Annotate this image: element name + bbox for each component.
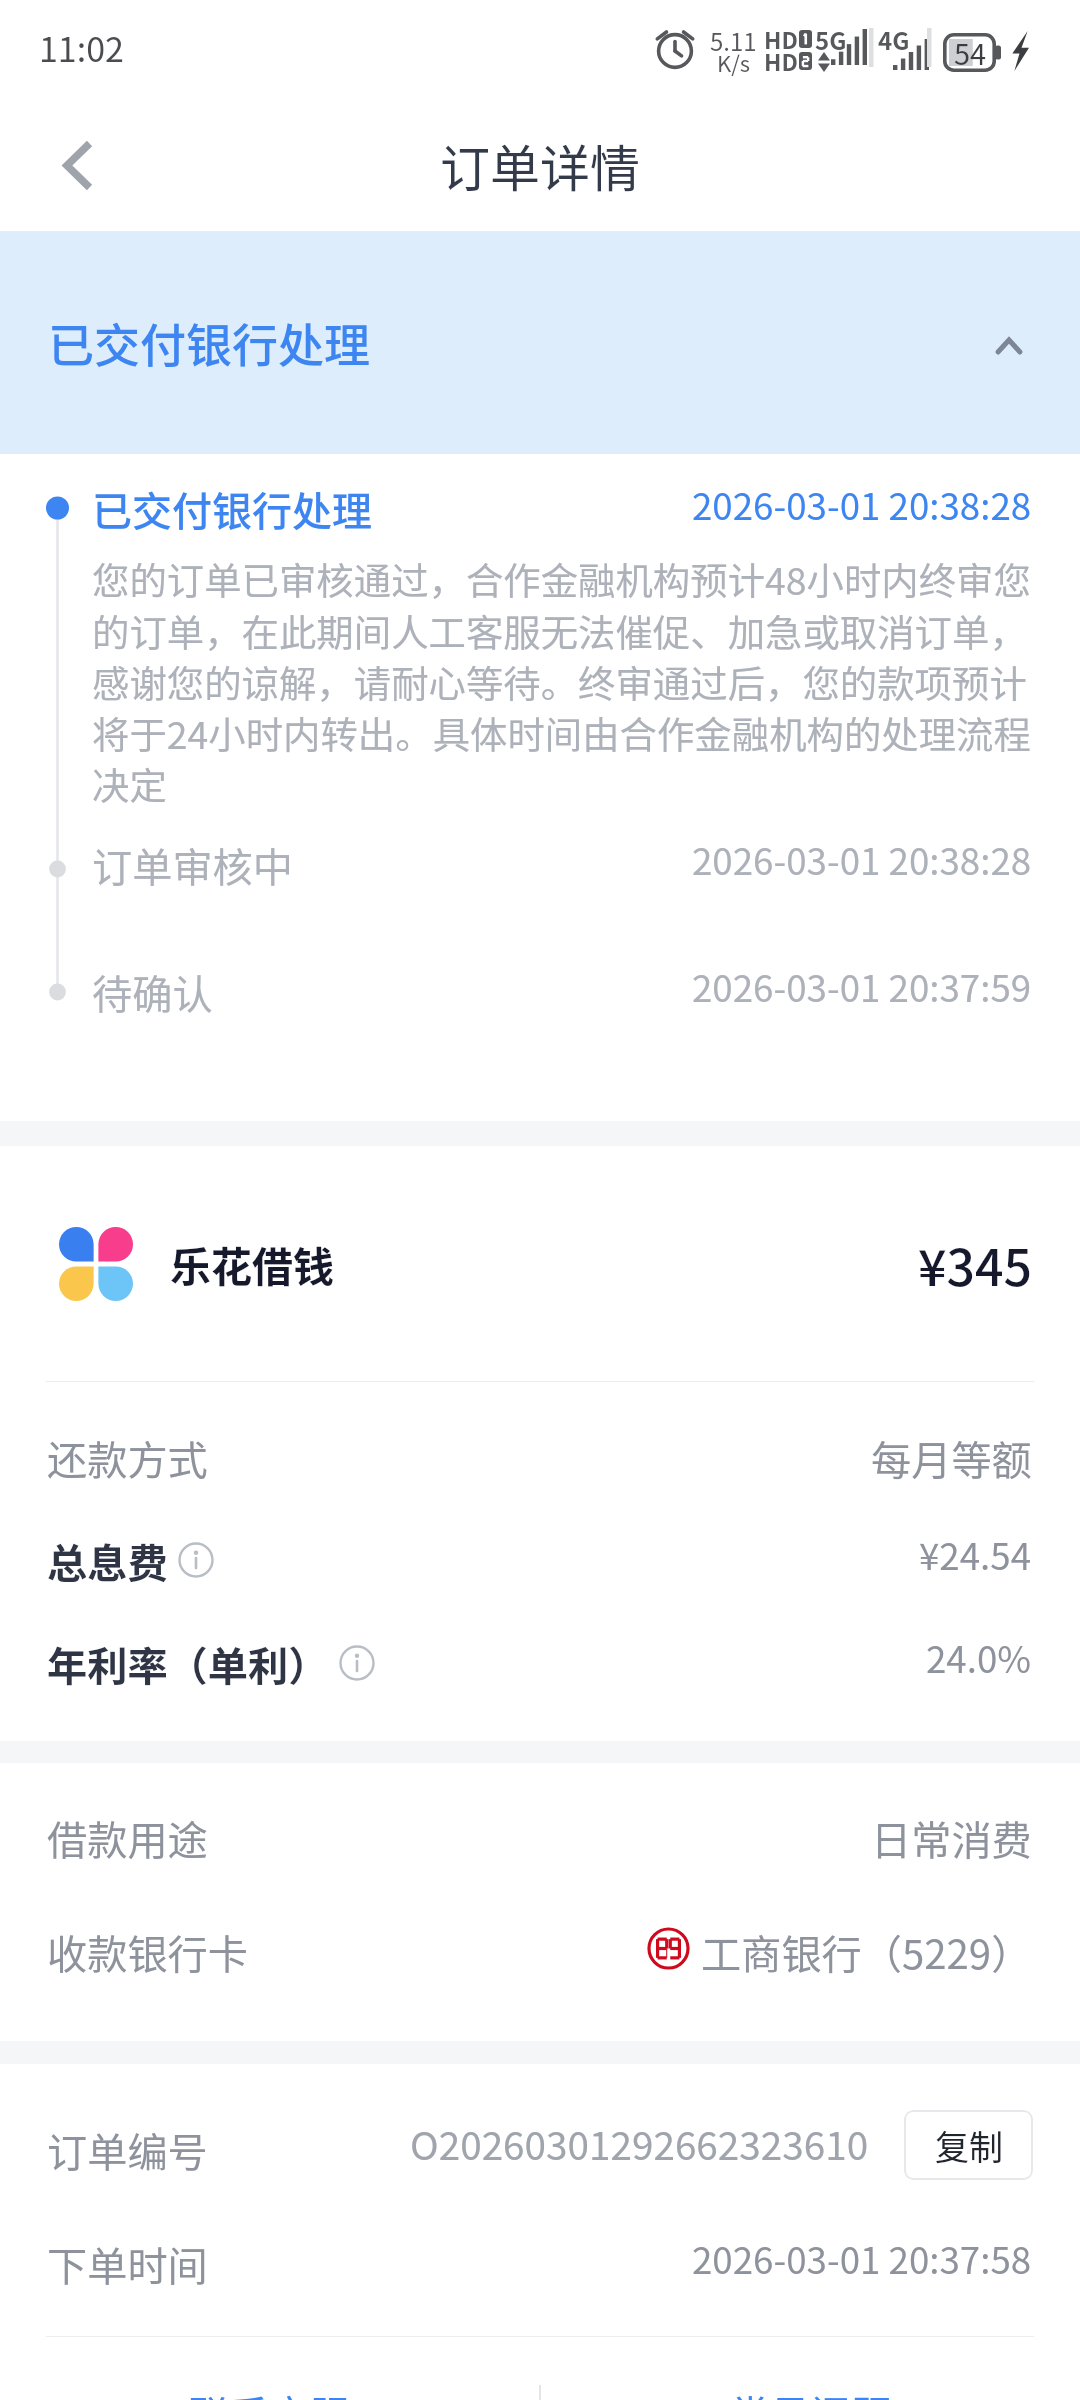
staticText: 订单编号 bbox=[47, 2120, 208, 2178]
staticText: 4G bbox=[878, 22, 910, 57]
staticText: 订单审核中 bbox=[92, 835, 293, 893]
staticText: 下单时间 bbox=[47, 2234, 208, 2292]
staticText: 您的订单已审核通过，合作金融机构预计48小时内终审您的订单，在此期间人工客服无法… bbox=[92, 552, 1032, 811]
staticText: 日常消费 bbox=[871, 1808, 1032, 1866]
staticText: HD bbox=[764, 44, 798, 77]
staticText: 已交付银行处理 bbox=[92, 480, 372, 538]
staticText: 11:02 bbox=[39, 23, 124, 72]
staticText: 乐花借钱 bbox=[170, 1234, 334, 1293]
staticText: ¥345 bbox=[918, 1228, 1032, 1300]
button[interactable]: 常见问题 bbox=[541, 2337, 1080, 2400]
button[interactable]: Back bbox=[13, 100, 143, 231]
staticText: 年利率（单利） bbox=[47, 1634, 329, 1692]
staticText: 收款银行卡 bbox=[47, 1922, 248, 1980]
staticText: 5.11 bbox=[710, 23, 757, 58]
staticText: 联系客服 bbox=[189, 2383, 350, 2400]
staticText: 总息费 bbox=[47, 1531, 168, 1589]
staticText: 借款用途 bbox=[47, 1808, 208, 1866]
button[interactable]: 借款用途 bbox=[47, 1780, 1032, 1894]
staticText: 还款方式 bbox=[47, 1428, 208, 1486]
button[interactable]: 已交付银行处理 bbox=[0, 231, 1080, 454]
staticText: 复制 bbox=[935, 2121, 1003, 2170]
staticText: 2026-03-01 20:38:28 bbox=[692, 477, 1032, 530]
button[interactable]: 收款银行卡 bbox=[47, 1894, 1032, 2008]
staticText: 每月等额 bbox=[871, 1428, 1032, 1486]
staticText: 常见问题 bbox=[730, 2383, 891, 2400]
staticText: 54 bbox=[954, 31, 987, 73]
button[interactable]: 还款方式 bbox=[47, 1405, 1032, 1508]
staticText: ¥24.54 bbox=[919, 1527, 1032, 1580]
staticText: HD bbox=[764, 22, 798, 55]
staticText: 工商银行（5229） bbox=[701, 1922, 1032, 1980]
staticText: 2026-03-01 20:38:28 bbox=[692, 832, 1032, 885]
staticText: K/s bbox=[717, 46, 751, 78]
staticText: O20260301292662323610 bbox=[410, 2115, 869, 2171]
staticText: 2026-03-01 20:37:58 bbox=[692, 2231, 1032, 2284]
button[interactable]: 年利率（单利） bbox=[47, 1611, 1032, 1714]
staticText: 订单详情 bbox=[440, 129, 640, 201]
staticText: 5G bbox=[815, 22, 847, 57]
other: Collapse bbox=[996, 338, 1022, 354]
button[interactable]: 总息费 bbox=[47, 1508, 1032, 1611]
button[interactable]: 联系客服 bbox=[0, 2337, 539, 2400]
button[interactable]: 复制 bbox=[904, 2110, 1033, 2180]
staticText: 2026-03-01 20:37:59 bbox=[692, 959, 1032, 1012]
staticText: 已交付银行处理 bbox=[48, 309, 370, 376]
staticText: 待确认 bbox=[92, 962, 213, 1020]
staticText: 24.0% bbox=[926, 1630, 1032, 1683]
